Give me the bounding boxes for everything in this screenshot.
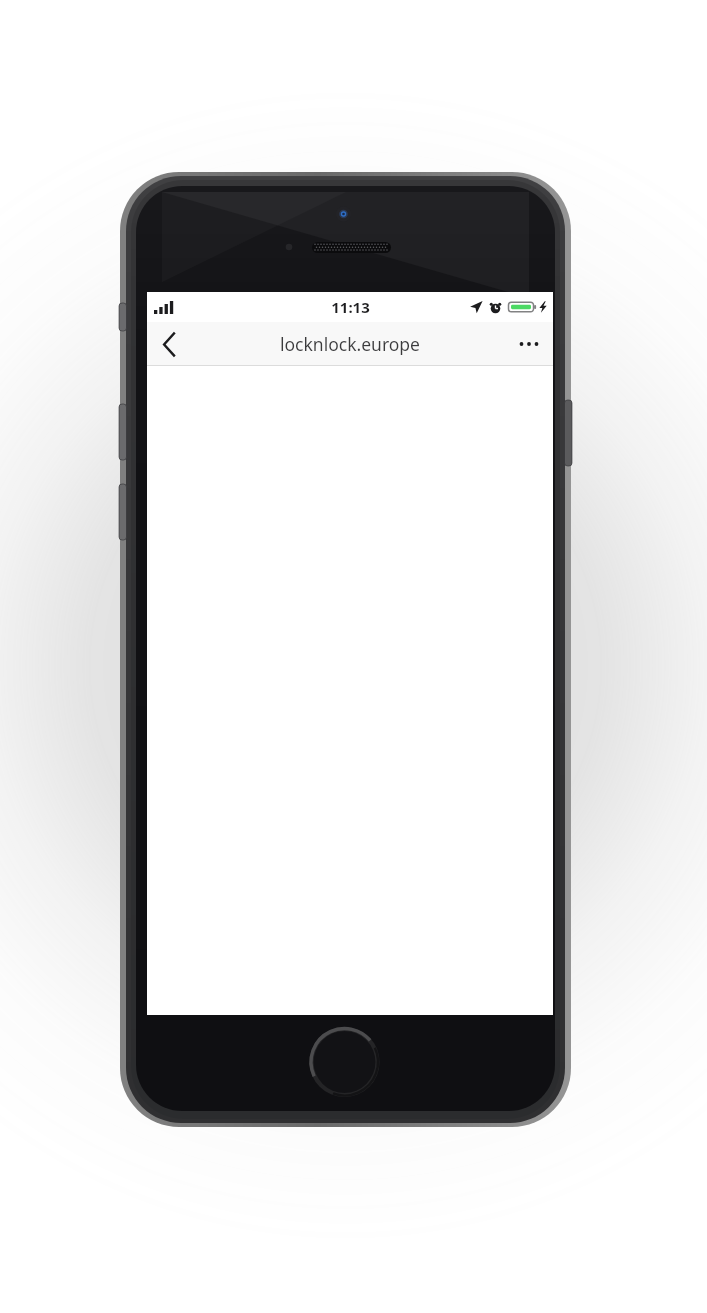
staticText: 11:13	[331, 297, 370, 317]
button[interactable]: More options	[505, 322, 553, 366]
button[interactable]: locknlock.europe	[280, 332, 420, 356]
button[interactable]: Back	[147, 322, 191, 366]
staticText: locknlock.europe	[280, 332, 420, 356]
